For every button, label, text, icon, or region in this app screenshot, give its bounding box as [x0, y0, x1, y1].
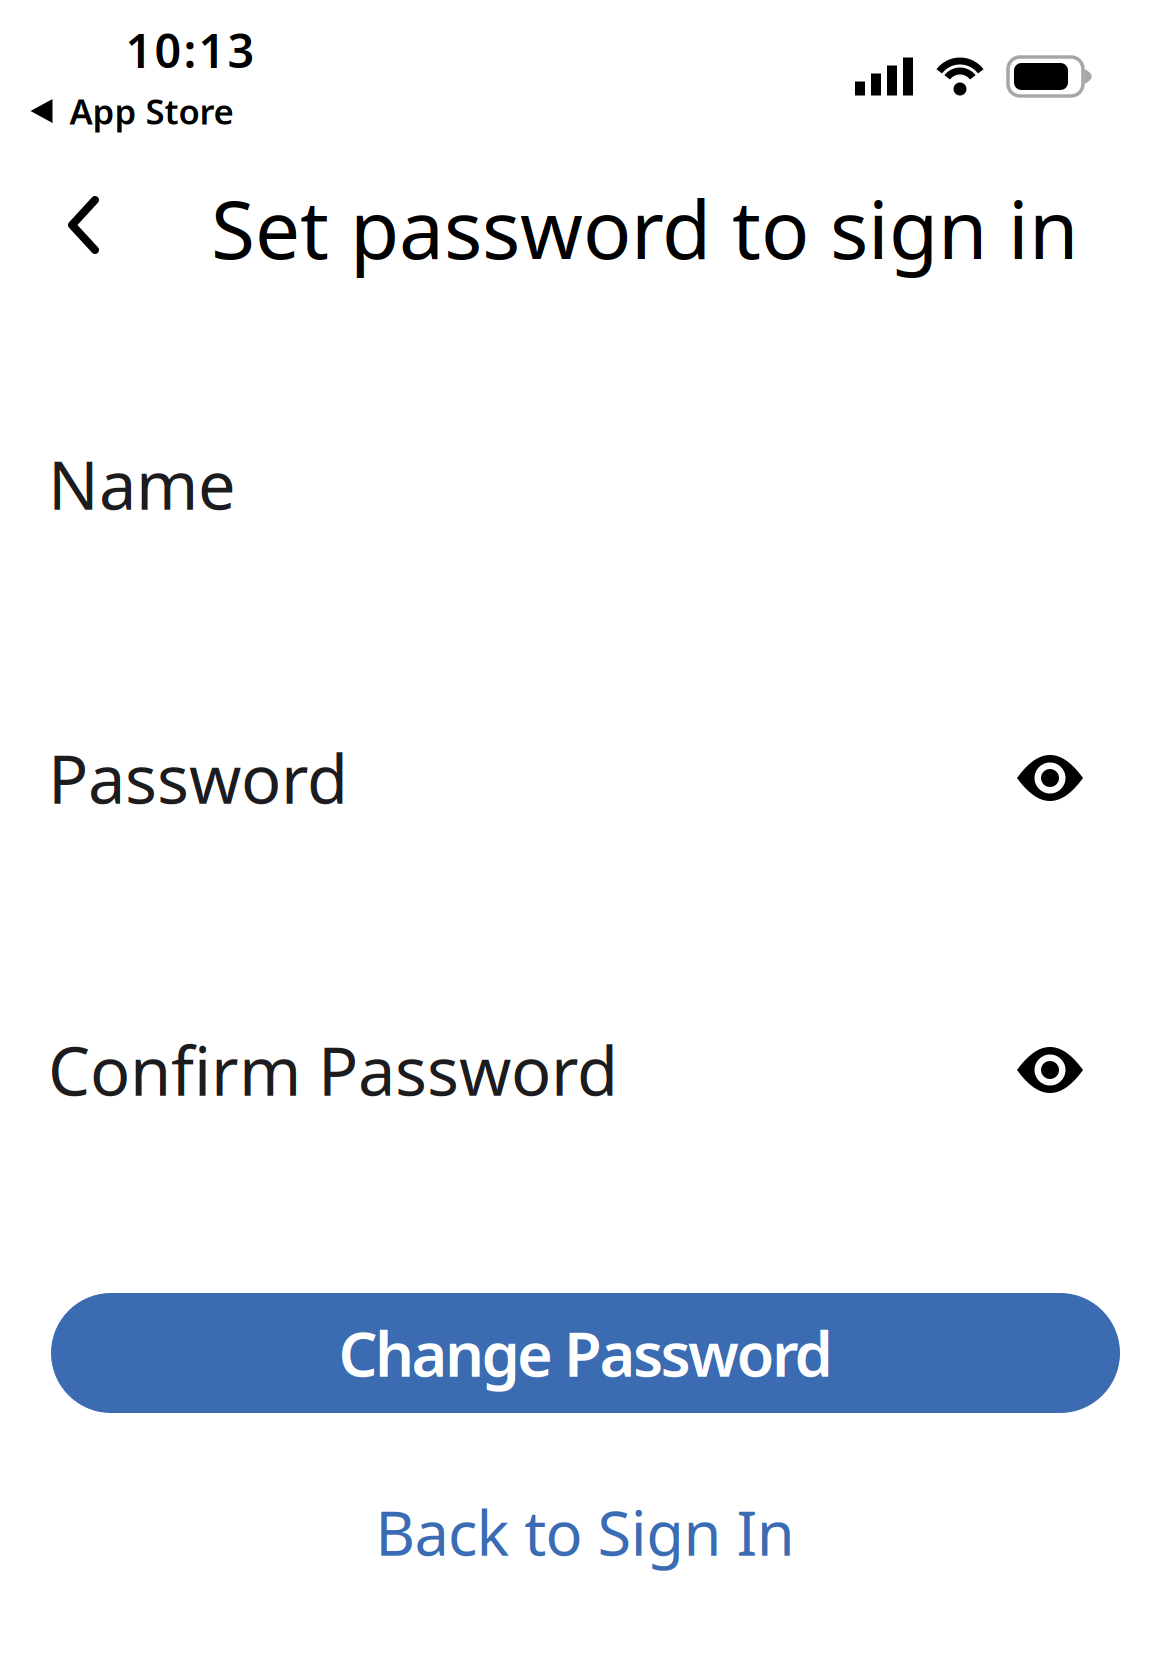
button[interactable]: Show password	[1005, 723, 1095, 833]
button[interactable]: Show password	[1005, 1015, 1095, 1125]
staticText: Password	[48, 734, 348, 822]
staticText: Back to Sign In	[375, 1491, 795, 1573]
staticText: Name	[48, 440, 236, 528]
staticText: Confirm Password	[48, 1026, 618, 1114]
staticText: Set password to sign in	[211, 175, 1078, 281]
staticText: App Store	[69, 88, 233, 134]
button[interactable]: Back to Sign In	[375, 1491, 795, 1573]
button[interactable]: Confirm Password	[48, 1005, 1005, 1135]
button[interactable]: Back	[63, 194, 103, 256]
button[interactable]: Change Password	[51, 1293, 1120, 1413]
button[interactable]: App Store	[30, 88, 233, 134]
staticText: Change Password	[338, 1312, 832, 1394]
staticText: 10:13	[125, 19, 254, 81]
button[interactable]: Name	[48, 419, 1095, 549]
button[interactable]: Password	[48, 713, 1005, 843]
